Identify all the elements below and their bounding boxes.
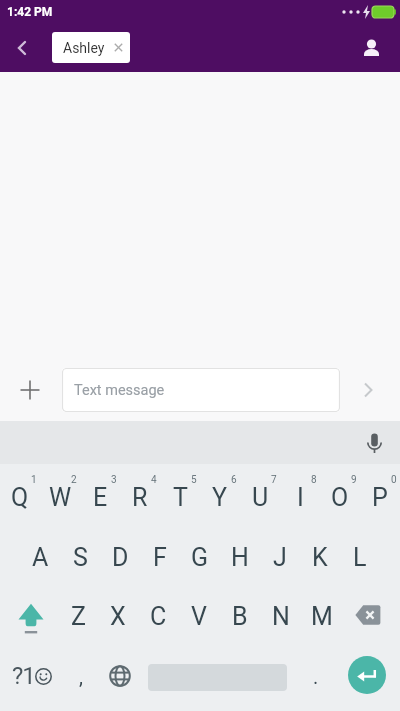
- button[interactable]: [8, 34, 36, 62]
- button[interactable]: G: [180, 534, 220, 580]
- staticText: ?1: [12, 662, 35, 690]
- staticText: K: [312, 543, 328, 572]
- staticText: Y: [212, 483, 228, 512]
- button[interactable]: W: [40, 474, 80, 520]
- button[interactable]: [358, 34, 386, 62]
- button[interactable]: X: [98, 593, 138, 639]
- staticText: 2: [71, 474, 77, 486]
- staticText: N: [272, 602, 290, 631]
- staticText: T: [173, 483, 188, 512]
- staticText: P: [372, 483, 388, 512]
- staticText: Z: [71, 602, 86, 631]
- button[interactable]: Y: [200, 474, 240, 520]
- button[interactable]: Text message: [62, 368, 340, 412]
- button[interactable]: R: [120, 474, 160, 520]
- button[interactable]: U: [240, 474, 280, 520]
- staticText: U: [252, 483, 269, 512]
- staticText: I: [297, 483, 304, 512]
- button[interactable]: J: [260, 534, 300, 580]
- button[interactable]: D: [100, 534, 140, 580]
- staticText: 3: [111, 474, 117, 486]
- staticText: Q: [11, 483, 29, 512]
- staticText: M: [311, 602, 333, 631]
- staticText: 1: [31, 474, 37, 486]
- button[interactable]: M: [301, 593, 342, 639]
- staticText: 9: [351, 474, 357, 486]
- staticText: 4: [151, 474, 157, 486]
- button[interactable]: S: [60, 534, 100, 580]
- staticText: .: [313, 665, 319, 688]
- staticText: A: [32, 543, 49, 572]
- staticText: H: [231, 543, 249, 572]
- button[interactable]: V: [178, 593, 219, 639]
- button[interactable]: N: [260, 593, 301, 639]
- staticText: 7: [271, 474, 277, 486]
- staticText: C: [150, 602, 167, 631]
- button[interactable]: [108, 664, 131, 687]
- button[interactable]: Z: [58, 593, 98, 639]
- staticText: D: [112, 543, 129, 572]
- staticText: 0: [391, 474, 397, 486]
- staticText: W: [49, 483, 72, 512]
- staticText: S: [73, 543, 88, 572]
- staticText: J: [273, 543, 287, 572]
- button[interactable]: [348, 656, 386, 694]
- button[interactable]: H: [220, 534, 260, 580]
- button[interactable]: C: [138, 593, 178, 639]
- button[interactable]: .: [303, 653, 328, 699]
- button[interactable]: [359, 428, 389, 458]
- button[interactable]: [14, 374, 46, 406]
- button[interactable]: L: [340, 534, 380, 580]
- button[interactable]: F: [140, 534, 180, 580]
- staticText: 1:42 PM: [7, 5, 53, 19]
- staticText: R: [132, 483, 148, 512]
- staticText: ,: [79, 665, 83, 688]
- staticText: 6: [231, 474, 237, 486]
- button[interactable]: [342, 593, 400, 639]
- button[interactable]: I: [280, 474, 320, 520]
- button[interactable]: B: [219, 593, 260, 639]
- button[interactable]: Ashley: [52, 32, 130, 63]
- staticText: L: [353, 543, 367, 572]
- button[interactable]: T: [160, 474, 200, 520]
- button[interactable]: [353, 375, 383, 405]
- button[interactable]: E: [80, 474, 120, 520]
- staticText: X: [110, 602, 126, 631]
- staticText: G: [191, 543, 209, 572]
- button[interactable]: ?1: [12, 662, 52, 690]
- staticText: F: [153, 543, 167, 572]
- staticText: V: [191, 602, 207, 631]
- button[interactable]: K: [300, 534, 340, 580]
- staticText: O: [331, 483, 349, 512]
- button[interactable]: O: [320, 474, 360, 520]
- button[interactable]: ,: [67, 653, 95, 699]
- button[interactable]: A: [20, 534, 60, 580]
- staticText: Ashley: [63, 40, 105, 56]
- button[interactable]: [0, 593, 58, 639]
- staticText: E: [93, 483, 108, 512]
- staticText: 8: [311, 474, 317, 486]
- button[interactable]: P: [360, 474, 400, 520]
- staticText: 5: [191, 474, 197, 486]
- staticText: Text message: [74, 382, 165, 399]
- staticText: B: [232, 602, 248, 631]
- button[interactable]: Q: [0, 474, 40, 520]
